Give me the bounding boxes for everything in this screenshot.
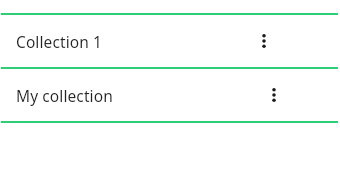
staticText: Collection 1: [16, 31, 103, 52]
button[interactable]: More options: [244, 17, 284, 65]
button[interactable]: More options: [254, 71, 294, 119]
button[interactable]: Collection 1: [0, 15, 340, 67]
staticText: My collection: [16, 85, 113, 106]
button[interactable]: My collection: [0, 69, 340, 121]
